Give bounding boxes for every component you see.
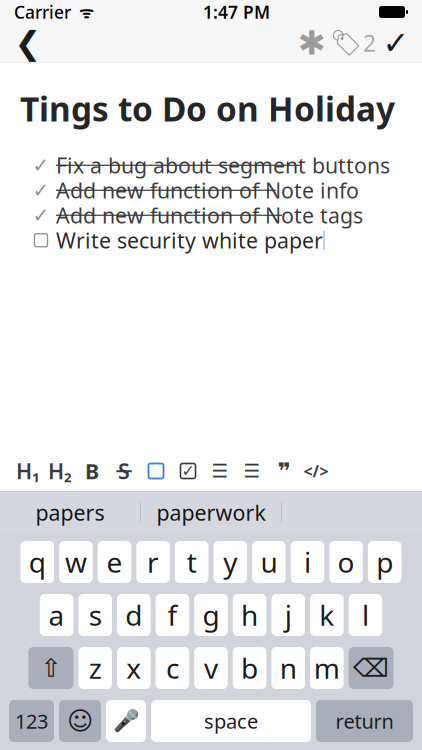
button[interactable]: n bbox=[271, 647, 305, 689]
button[interactable]: a bbox=[40, 594, 73, 636]
button[interactable]: q bbox=[20, 541, 54, 583]
button[interactable]: e bbox=[98, 541, 131, 583]
button[interactable]: Emoji bbox=[59, 700, 101, 742]
staticText: 123 bbox=[15, 708, 48, 734]
button[interactable]: o bbox=[329, 541, 363, 583]
staticText: i bbox=[304, 543, 311, 581]
staticText: l bbox=[362, 596, 369, 634]
staticText: H₂ bbox=[48, 457, 72, 485]
staticText: Add new function of Note info bbox=[56, 176, 359, 204]
staticText: space bbox=[204, 708, 258, 734]
staticText: Fix a bug about segment buttons bbox=[56, 151, 390, 179]
button[interactable]: r bbox=[136, 541, 170, 583]
button[interactable]: s bbox=[78, 594, 112, 636]
staticText: B bbox=[85, 457, 99, 485]
staticText: ⇧ bbox=[40, 654, 61, 682]
button[interactable]: Strikethrough bbox=[108, 454, 140, 488]
staticText: ✓ bbox=[32, 154, 49, 177]
button[interactable]: g bbox=[194, 594, 228, 636]
button[interactable]: ✓ bbox=[34, 203, 363, 228]
button[interactable]: f bbox=[156, 594, 189, 636]
button[interactable]: m bbox=[310, 647, 344, 689]
button[interactable]: j bbox=[271, 594, 305, 636]
staticText: ✓ bbox=[382, 25, 409, 61]
button[interactable]: Heading 2 bbox=[44, 454, 76, 488]
staticText: d bbox=[125, 596, 142, 634]
button[interactable]: z bbox=[78, 647, 112, 689]
staticText: Write security white paper bbox=[56, 226, 323, 254]
button[interactable]: d bbox=[117, 594, 151, 636]
button[interactable]: l bbox=[349, 594, 382, 636]
staticText: ☰ bbox=[243, 460, 260, 482]
staticText: p bbox=[376, 543, 393, 581]
button[interactable]: u bbox=[252, 541, 286, 583]
button[interactable]: t bbox=[175, 541, 208, 583]
button[interactable]: Numbers bbox=[9, 700, 54, 742]
button[interactable]: v bbox=[194, 647, 228, 689]
button[interactable]: w bbox=[59, 541, 93, 583]
staticText: 🎤 bbox=[112, 709, 139, 733]
button[interactable]: Bold bbox=[76, 454, 108, 488]
button[interactable]: Code bbox=[300, 454, 332, 488]
button[interactable]: Done bbox=[376, 24, 416, 62]
button[interactable]: Numbered list bbox=[236, 454, 268, 488]
staticText: ✓ bbox=[32, 204, 49, 227]
staticText: 1:47 PM bbox=[203, 0, 270, 23]
button[interactable]: Tags, 2 bbox=[330, 24, 376, 62]
staticText: z bbox=[89, 649, 102, 687]
staticText: ⌫ bbox=[353, 654, 389, 682]
staticText: c bbox=[166, 649, 179, 687]
staticText: y bbox=[223, 543, 237, 581]
button[interactable]: Heading 1 bbox=[12, 454, 44, 488]
button[interactable]: Write security white paper bbox=[34, 228, 325, 253]
button[interactable]: space bbox=[151, 700, 311, 742]
button[interactable]: Checkbox unchecked bbox=[140, 454, 172, 488]
button[interactable]: Back bbox=[6, 24, 50, 62]
staticText: return bbox=[335, 708, 393, 734]
staticText: ☺ bbox=[67, 707, 93, 735]
button[interactable]: Dictate bbox=[106, 700, 146, 742]
staticText: x bbox=[126, 649, 141, 687]
staticText: q bbox=[29, 543, 46, 581]
button[interactable]: i bbox=[291, 541, 324, 583]
button[interactable]: papers bbox=[0, 493, 140, 531]
button[interactable]: c bbox=[156, 647, 189, 689]
staticText: paperwork bbox=[156, 498, 265, 527]
staticText: g bbox=[202, 596, 219, 634]
button[interactable]: k bbox=[310, 594, 344, 636]
button[interactable]: Pin note bbox=[294, 24, 330, 62]
staticText: papers bbox=[35, 498, 104, 527]
staticText: n bbox=[280, 649, 297, 687]
button[interactable]: ✓ bbox=[34, 178, 359, 203]
staticText: m bbox=[314, 649, 340, 687]
staticText: ✓ bbox=[32, 179, 49, 202]
button[interactable]: Bulleted list bbox=[204, 454, 236, 488]
button[interactable]: h bbox=[233, 594, 266, 636]
staticText: f bbox=[167, 596, 177, 634]
button[interactable]: b bbox=[233, 647, 266, 689]
staticText: ✱ bbox=[298, 24, 326, 62]
staticText: 2 bbox=[363, 28, 376, 58]
button[interactable]: y bbox=[213, 541, 247, 583]
staticText: k bbox=[319, 596, 334, 634]
button[interactable]: paperwork bbox=[141, 493, 281, 531]
button[interactable]: return bbox=[316, 700, 413, 742]
button[interactable]: ✓ bbox=[34, 153, 390, 178]
staticText: v bbox=[204, 649, 218, 687]
staticText: S̶ bbox=[118, 457, 130, 485]
staticText: ᯤ bbox=[71, 1, 94, 23]
button[interactable]: Shift bbox=[28, 647, 73, 689]
staticText: s bbox=[89, 596, 102, 634]
staticText: Add new function of Note tags bbox=[56, 201, 363, 229]
button[interactable]: Checkbox checked bbox=[172, 454, 204, 488]
staticText: a bbox=[49, 596, 65, 634]
button[interactable]: p bbox=[368, 541, 401, 583]
staticText: </> bbox=[303, 460, 328, 482]
staticText: t bbox=[187, 543, 197, 581]
staticText: Tings to Do on Holiday bbox=[20, 86, 395, 131]
staticText: b bbox=[241, 649, 258, 687]
staticText: ☰ bbox=[211, 460, 228, 482]
button[interactable]: x bbox=[117, 647, 151, 689]
button[interactable]: Quote bbox=[268, 454, 300, 488]
button[interactable]: Delete bbox=[349, 647, 394, 689]
